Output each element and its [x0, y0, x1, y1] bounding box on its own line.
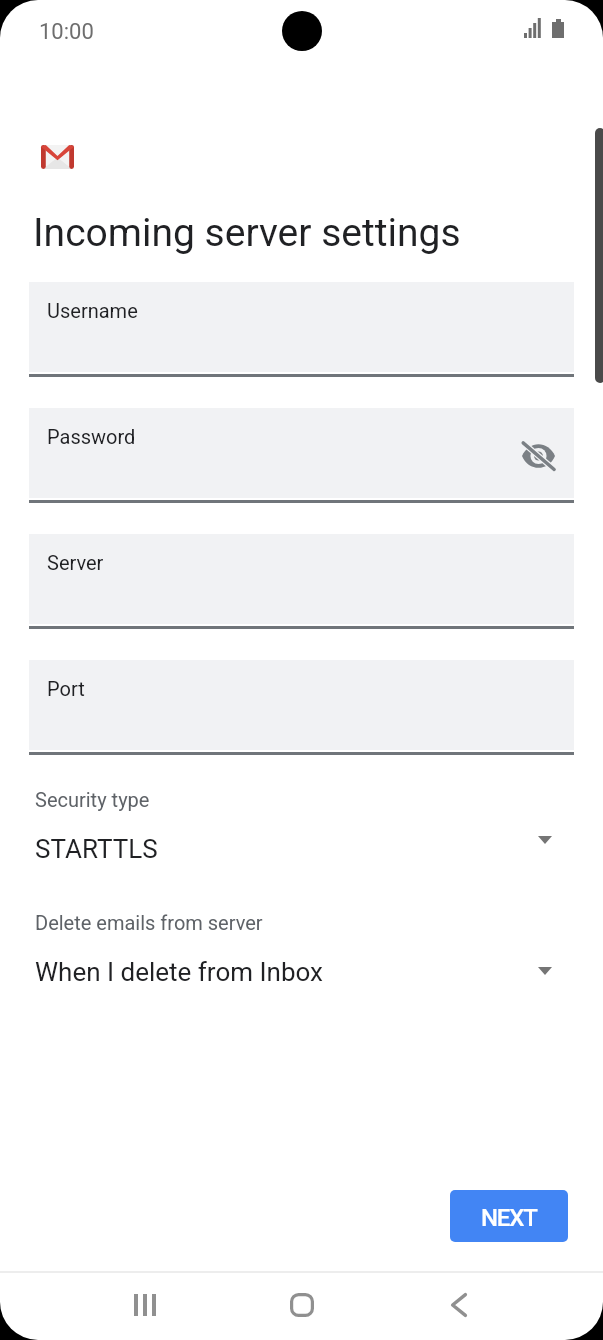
button[interactable]: Server: [29, 534, 574, 628]
button[interactable]: Password: [29, 408, 574, 502]
staticText: Server: [47, 551, 104, 574]
button[interactable]: Port: [29, 660, 574, 754]
button[interactable]: Username: [29, 282, 574, 376]
button[interactable]: NEXT: [450, 1190, 568, 1242]
button[interactable]: Back: [424, 1270, 494, 1340]
button[interactable]: Show password: [501, 431, 576, 481]
button[interactable]: Security type: [0, 790, 603, 890]
staticText: Security type: [35, 788, 150, 811]
button[interactable]: Recents: [110, 1270, 180, 1340]
staticText: NEXT: [481, 1204, 537, 1232]
staticText: 10:00: [39, 19, 94, 45]
staticText: Password: [47, 425, 136, 448]
staticText: When I delete from Inbox: [35, 957, 323, 987]
staticText: Incoming server settings: [33, 210, 461, 256]
staticText: STARTTLS: [35, 834, 158, 864]
button[interactable]: Delete emails from server: [0, 913, 603, 1013]
button[interactable]: Home: [267, 1270, 337, 1340]
staticText: Delete emails from server: [35, 911, 263, 934]
staticText: Port: [47, 677, 85, 700]
staticText: Username: [47, 299, 138, 322]
